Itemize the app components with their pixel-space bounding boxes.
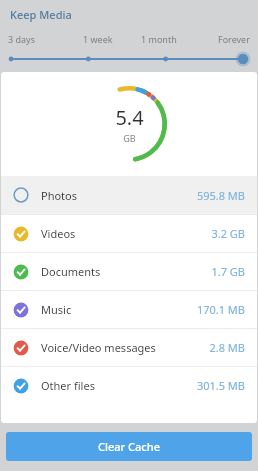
staticText: 1 month bbox=[141, 33, 177, 45]
button[interactable]: Documents bbox=[1, 253, 257, 290]
staticText: 595.8 MB bbox=[196, 188, 245, 203]
staticText: Documents bbox=[41, 264, 211, 279]
staticText: Music bbox=[41, 302, 196, 317]
staticText: 1.7 GB bbox=[211, 264, 245, 279]
button[interactable]: Clear Cache bbox=[6, 432, 252, 461]
staticText: 170.1 MB bbox=[196, 302, 245, 317]
staticText: GB bbox=[123, 132, 136, 144]
staticText: 5.4 bbox=[115, 104, 144, 131]
staticText: 3.2 GB bbox=[211, 226, 245, 241]
staticText: 3 days bbox=[8, 33, 35, 45]
staticText: Keep Media bbox=[10, 7, 72, 22]
button[interactable]: Voice/Video messages bbox=[1, 329, 257, 366]
staticText: Voice/Video messages bbox=[41, 340, 209, 355]
staticText: Forever bbox=[218, 33, 250, 45]
staticText: 1 week bbox=[83, 33, 113, 45]
button[interactable]: Keep media duration slider bbox=[0, 51, 258, 67]
staticText: Other files bbox=[41, 378, 196, 393]
button[interactable]: Music bbox=[1, 291, 257, 328]
button[interactable]: Other files bbox=[1, 367, 257, 404]
button[interactable]: Videos bbox=[1, 215, 257, 252]
staticText: Photos bbox=[41, 188, 196, 203]
staticText: Videos bbox=[41, 226, 211, 241]
button[interactable]: Photos bbox=[1, 176, 257, 214]
staticText: 2.8 MB bbox=[209, 340, 245, 355]
staticText: Clear Cache bbox=[98, 439, 160, 454]
staticText: 301.5 MB bbox=[196, 378, 245, 393]
